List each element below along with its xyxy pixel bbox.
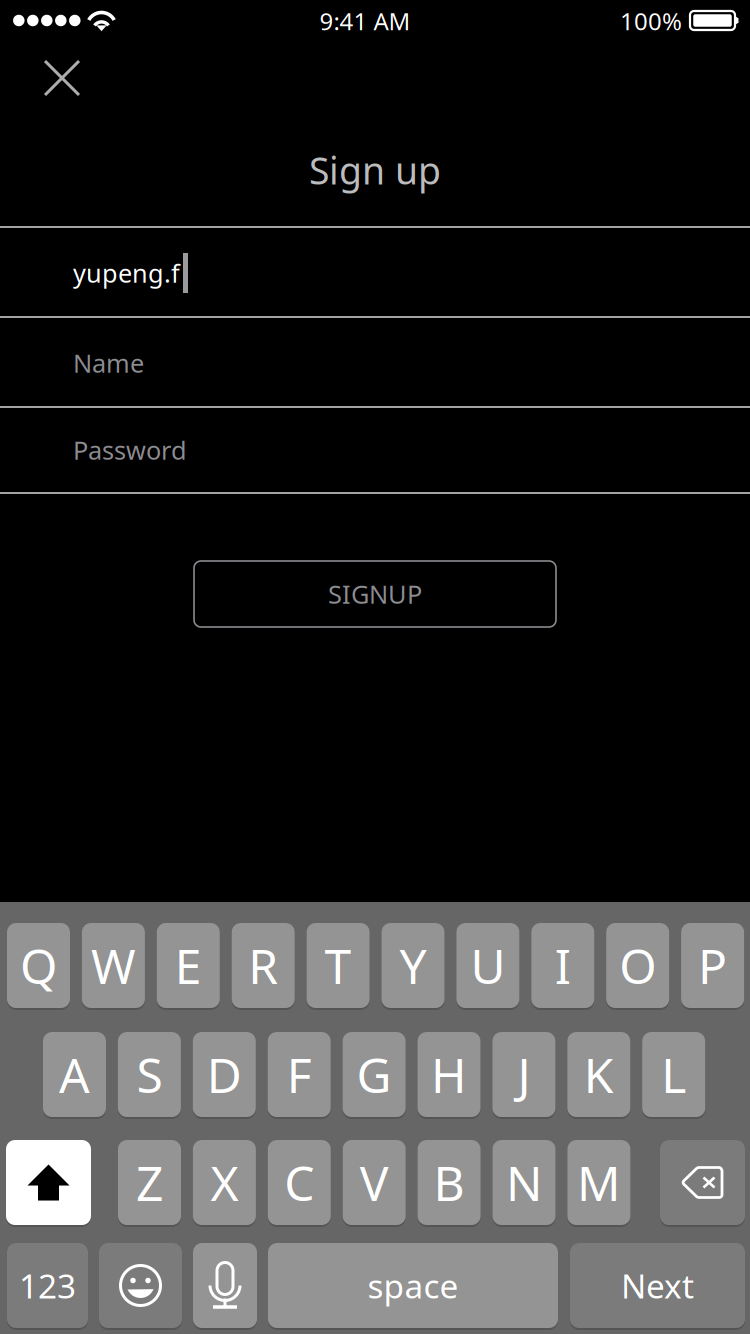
button[interactable]: Emoji: [99, 1243, 182, 1328]
button[interactable]: space: [268, 1243, 558, 1328]
button[interactable]: F: [268, 1032, 331, 1117]
staticText: H: [431, 1043, 467, 1106]
button[interactable]: W: [82, 923, 145, 1008]
button[interactable]: D: [193, 1032, 256, 1117]
button[interactable]: Z: [118, 1140, 181, 1225]
button[interactable]: K: [567, 1032, 630, 1117]
staticText: M: [577, 1151, 621, 1214]
button[interactable]: X: [193, 1140, 256, 1225]
staticText: J: [517, 1043, 530, 1106]
staticText: T: [325, 934, 352, 997]
button[interactable]: N: [492, 1140, 555, 1225]
staticText: R: [248, 934, 278, 997]
staticText: 9:41 AM: [319, 5, 410, 37]
button[interactable]: G: [343, 1032, 406, 1117]
button[interactable]: U: [456, 923, 519, 1008]
staticText: S: [136, 1043, 162, 1106]
button[interactable]: B: [418, 1140, 481, 1225]
button[interactable]: C: [268, 1140, 331, 1225]
staticText: W: [91, 934, 136, 997]
button[interactable]: E: [157, 923, 220, 1008]
staticText: L: [661, 1043, 686, 1106]
staticText: Sign up: [309, 145, 441, 195]
staticText: Password: [73, 433, 187, 467]
staticText: 123: [19, 1263, 76, 1308]
button[interactable]: P: [681, 923, 744, 1008]
staticText: K: [584, 1043, 614, 1106]
staticText: yupeng.f: [73, 256, 180, 290]
staticText: Y: [399, 934, 426, 997]
staticText: space: [367, 1263, 458, 1308]
button[interactable]: Delete: [660, 1140, 745, 1225]
button[interactable]: I: [531, 923, 594, 1008]
button[interactable]: Shift: [6, 1140, 91, 1225]
staticText: SIGNUP: [328, 577, 422, 611]
button[interactable]: T: [307, 923, 370, 1008]
button[interactable]: 123: [7, 1243, 88, 1328]
button[interactable]: A: [43, 1032, 106, 1117]
button[interactable]: S: [118, 1032, 181, 1117]
button[interactable]: Next: [570, 1243, 745, 1328]
staticText: X: [210, 1151, 238, 1214]
staticText: G: [357, 1043, 392, 1106]
staticText: B: [434, 1151, 465, 1214]
button[interactable]: Q: [7, 923, 70, 1008]
button[interactable]: Dictate: [193, 1243, 257, 1328]
button[interactable]: Close: [29, 45, 94, 110]
staticText: O: [619, 934, 656, 997]
staticText: Q: [20, 934, 57, 997]
button[interactable]: H: [417, 1032, 480, 1117]
button[interactable]: R: [232, 923, 295, 1008]
button[interactable]: V: [343, 1140, 406, 1225]
button[interactable]: J: [492, 1032, 555, 1117]
staticText: Next: [621, 1263, 694, 1308]
staticText: A: [59, 1043, 90, 1106]
staticText: D: [207, 1043, 242, 1106]
staticText: F: [287, 1043, 312, 1106]
staticText: P: [698, 934, 727, 997]
staticText: E: [175, 934, 202, 997]
staticText: V: [360, 1151, 389, 1214]
staticText: N: [506, 1151, 542, 1214]
staticText: U: [470, 934, 505, 997]
staticText: 100%: [620, 5, 682, 37]
button[interactable]: L: [642, 1032, 705, 1117]
button[interactable]: Y: [381, 923, 444, 1008]
button[interactable]: M: [567, 1140, 630, 1225]
staticText: C: [284, 1151, 314, 1214]
staticText: Z: [136, 1151, 163, 1214]
button[interactable]: O: [606, 923, 669, 1008]
staticText: Name: [73, 346, 144, 380]
staticText: I: [555, 934, 571, 997]
button[interactable]: SIGNUP: [194, 561, 556, 627]
